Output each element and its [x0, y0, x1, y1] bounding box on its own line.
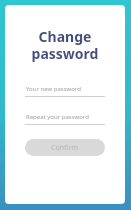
staticText: Change password	[5, 27, 125, 63]
button[interactable]: Repeat your password	[25, 113, 105, 125]
button[interactable]: Your new password	[25, 85, 105, 97]
button[interactable]: Confirm	[25, 139, 105, 156]
staticText: Confirm	[51, 143, 79, 153]
staticText: Your new password	[26, 85, 81, 93]
staticText: Repeat your password	[26, 113, 89, 121]
